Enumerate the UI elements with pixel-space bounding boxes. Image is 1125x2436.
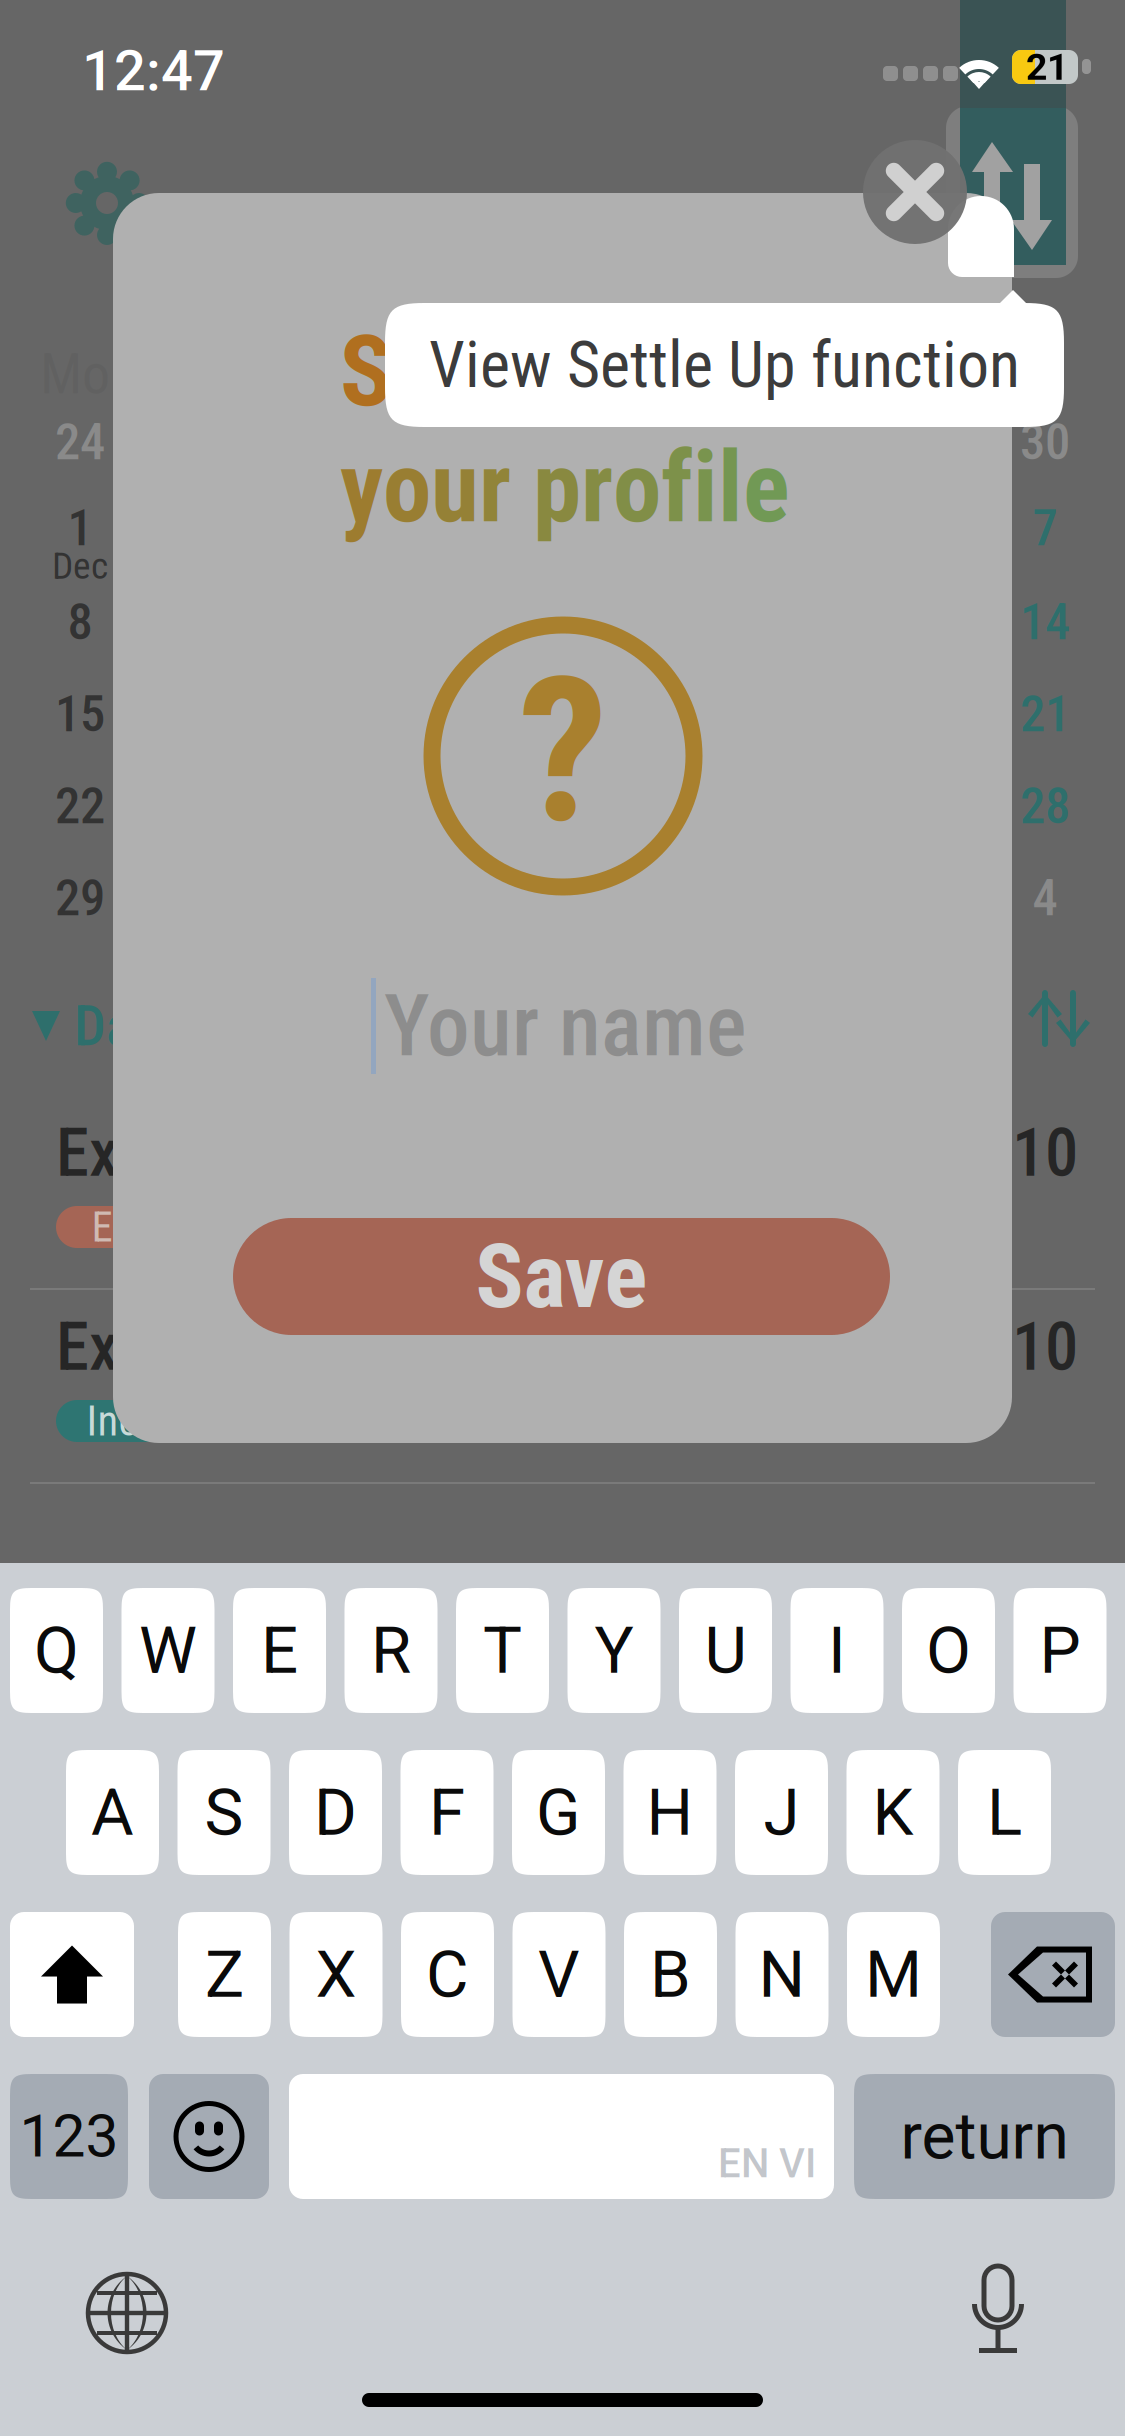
staticText: S bbox=[340, 315, 393, 429]
staticText: Expense bbox=[56, 1308, 279, 1386]
staticText: 14 bbox=[1020, 592, 1070, 652]
button[interactable]: 123 bbox=[10, 2074, 128, 2199]
button[interactable]: Dictate bbox=[962, 2266, 1034, 2362]
button[interactable]: return bbox=[854, 2074, 1115, 2199]
button[interactable]: F bbox=[400, 1750, 493, 1875]
button[interactable]: Emoji bbox=[149, 2074, 269, 2199]
button[interactable]: X bbox=[289, 1912, 382, 2037]
staticText: 30 bbox=[1020, 412, 1070, 472]
button[interactable]: Close bbox=[863, 140, 967, 244]
staticText: O bbox=[926, 1612, 971, 1689]
button[interactable]: Save bbox=[233, 1218, 890, 1335]
staticText: Date bbox=[74, 993, 177, 1059]
staticText: 12:47 bbox=[82, 38, 225, 104]
button[interactable]: S bbox=[177, 1750, 270, 1875]
staticText: 10 bbox=[1012, 1308, 1078, 1386]
staticText: Income bbox=[86, 1396, 211, 1446]
button[interactable]: V bbox=[512, 1912, 605, 2037]
staticText: D bbox=[314, 1774, 357, 1851]
staticText: u bbox=[431, 431, 479, 545]
staticText: Q bbox=[34, 1612, 79, 1689]
staticText: G bbox=[536, 1774, 581, 1851]
staticText: 21 bbox=[1026, 45, 1068, 89]
staticText: N bbox=[758, 1936, 805, 2013]
staticText: Z bbox=[205, 1936, 244, 2013]
button[interactable]: A bbox=[66, 1750, 159, 1875]
staticText: return bbox=[900, 2099, 1068, 2174]
staticText: 7 bbox=[1032, 498, 1057, 558]
staticText: 28 bbox=[1020, 776, 1070, 836]
staticText: r bbox=[479, 431, 511, 545]
staticText: P bbox=[1039, 1612, 1080, 1689]
staticText: E bbox=[261, 1612, 298, 1689]
button[interactable]: Space bbox=[289, 2074, 834, 2199]
button[interactable]: View Settle Up function bbox=[385, 303, 1064, 427]
button[interactable]: N bbox=[735, 1912, 828, 2037]
button[interactable]: D bbox=[289, 1750, 382, 1875]
staticText: EN VI bbox=[718, 2140, 816, 2187]
staticText: I bbox=[828, 1612, 846, 1689]
staticText: r bbox=[581, 431, 613, 545]
staticText: y bbox=[340, 431, 383, 545]
button[interactable]: P bbox=[1013, 1588, 1106, 1713]
button[interactable]: Change keyboard bbox=[88, 2274, 166, 2352]
staticText: Save bbox=[475, 1224, 647, 1329]
staticText: W bbox=[139, 1612, 197, 1689]
button[interactable]: H bbox=[623, 1750, 716, 1875]
staticText: 123 bbox=[19, 2102, 118, 2171]
button[interactable]: M bbox=[847, 1912, 940, 2037]
button[interactable]: K bbox=[846, 1750, 939, 1875]
staticText: C bbox=[426, 1936, 469, 2013]
staticText: 29 bbox=[55, 868, 105, 928]
staticText: p bbox=[533, 431, 581, 545]
staticText: l bbox=[718, 431, 743, 545]
button[interactable]: O bbox=[902, 1588, 995, 1713]
staticText: p bbox=[540, 315, 588, 429]
staticText: ? bbox=[518, 635, 607, 869]
button[interactable]: T bbox=[456, 1588, 549, 1713]
staticText: Mon bbox=[40, 341, 137, 407]
staticText: 4 bbox=[1032, 868, 1057, 928]
staticText: R bbox=[371, 1612, 411, 1689]
button[interactable]: Z bbox=[178, 1912, 271, 2037]
staticText: 1 bbox=[67, 498, 92, 558]
button[interactable]: Delete bbox=[991, 1912, 1115, 2037]
staticText: Dec bbox=[52, 544, 108, 588]
staticText: S bbox=[204, 1774, 243, 1851]
staticText: View Settle Up function bbox=[429, 327, 1020, 402]
staticText: V bbox=[538, 1936, 580, 2013]
staticText: 10 bbox=[1012, 1114, 1078, 1192]
button[interactable]: Shift bbox=[10, 1912, 134, 2037]
staticText: u bbox=[492, 315, 540, 429]
staticText: 21 bbox=[1020, 684, 1070, 744]
staticText: K bbox=[872, 1774, 913, 1851]
button[interactable]: G bbox=[512, 1750, 605, 1875]
staticText: 22 bbox=[55, 776, 105, 836]
button[interactable]: Y bbox=[567, 1588, 660, 1713]
button[interactable]: I bbox=[790, 1588, 883, 1713]
button[interactable]: J bbox=[735, 1750, 828, 1875]
staticText: e bbox=[743, 431, 790, 545]
staticText bbox=[470, 315, 492, 429]
staticText: F bbox=[429, 1774, 465, 1851]
staticText: Your name bbox=[384, 976, 746, 1076]
staticText: T bbox=[483, 1612, 522, 1689]
button[interactable]: B bbox=[624, 1912, 717, 2037]
staticText: B bbox=[650, 1936, 691, 2013]
button[interactable]: E bbox=[233, 1588, 326, 1713]
staticText: 8 bbox=[67, 592, 92, 652]
staticText: X bbox=[315, 1936, 356, 2013]
button[interactable]: U bbox=[679, 1588, 772, 1713]
staticText: t bbox=[440, 315, 470, 429]
staticText: J bbox=[763, 1774, 799, 1851]
staticText: M bbox=[865, 1936, 922, 2013]
button[interactable]: R bbox=[344, 1588, 437, 1713]
staticText: 24 bbox=[55, 412, 105, 472]
staticText: o bbox=[383, 431, 431, 545]
button[interactable]: W bbox=[121, 1588, 214, 1713]
button[interactable]: C bbox=[401, 1912, 494, 2037]
button[interactable]: L bbox=[958, 1750, 1051, 1875]
button[interactable]: Q bbox=[10, 1588, 103, 1713]
staticText: Y bbox=[594, 1612, 633, 1689]
